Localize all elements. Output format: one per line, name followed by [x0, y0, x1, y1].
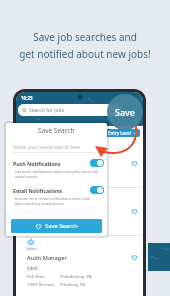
button[interactable]: Save job — [130, 253, 139, 262]
staticText: 100% Remote — [27, 282, 55, 288]
staticText: Phoenix, AZ — [68, 168, 92, 174]
staticText: Save — [115, 106, 136, 118]
staticText: Senior Accountant — [27, 148, 77, 156]
staticText: Name your saved search here — [13, 144, 80, 151]
staticText: Full Time — [27, 216, 45, 222]
staticText: Include me in email notifications when n… — [15, 196, 91, 206]
button[interactable]: Save job — [130, 207, 139, 216]
staticText: Get push notifications when new jobs mat… — [15, 169, 98, 179]
staticText: Save Search — [38, 126, 75, 135]
staticText: Jobot — [27, 159, 38, 165]
staticText: Tax Manager — [27, 196, 62, 204]
button[interactable]: Search for jobs — [18, 104, 122, 116]
button[interactable]: Save Search — [11, 219, 102, 233]
staticText: Audit Manager — [27, 254, 67, 262]
staticText: Full Time, Remote — [27, 168, 63, 174]
staticText: Jobot — [27, 265, 38, 271]
staticText: Save Search — [45, 222, 78, 230]
button[interactable] — [90, 159, 104, 167]
button[interactable]: Senior Accountant — [16, 140, 143, 188]
staticText: Full Time, — [27, 274, 46, 280]
button[interactable] — [90, 186, 104, 194]
button[interactable]: Save job — [130, 159, 139, 168]
staticText: Salt Lake City, UT, AZ, — [50, 216, 92, 222]
staticText: Push Notifications — [13, 160, 61, 167]
button[interactable]: Tax Manager — [16, 188, 143, 236]
staticText: 10:25 — [21, 95, 33, 101]
staticText: get notified about new jobs! — [19, 47, 151, 61]
staticText: Email Notifications — [13, 187, 63, 194]
button[interactable]: Entry Level — [108, 129, 137, 137]
staticText: Pittsburg, PA — [60, 282, 86, 288]
staticText: Entry Level — [108, 130, 132, 136]
button[interactable]: Name your saved search here — [13, 143, 100, 152]
button[interactable]: Save — [107, 94, 143, 130]
button[interactable]: Jobot — [16, 236, 143, 296]
staticText: Jobot — [27, 246, 37, 251]
staticText: Search for jobs — [29, 107, 65, 114]
staticText: Save job searches and — [33, 30, 137, 44]
staticText: Philadelphia, PA, — [60, 274, 93, 280]
